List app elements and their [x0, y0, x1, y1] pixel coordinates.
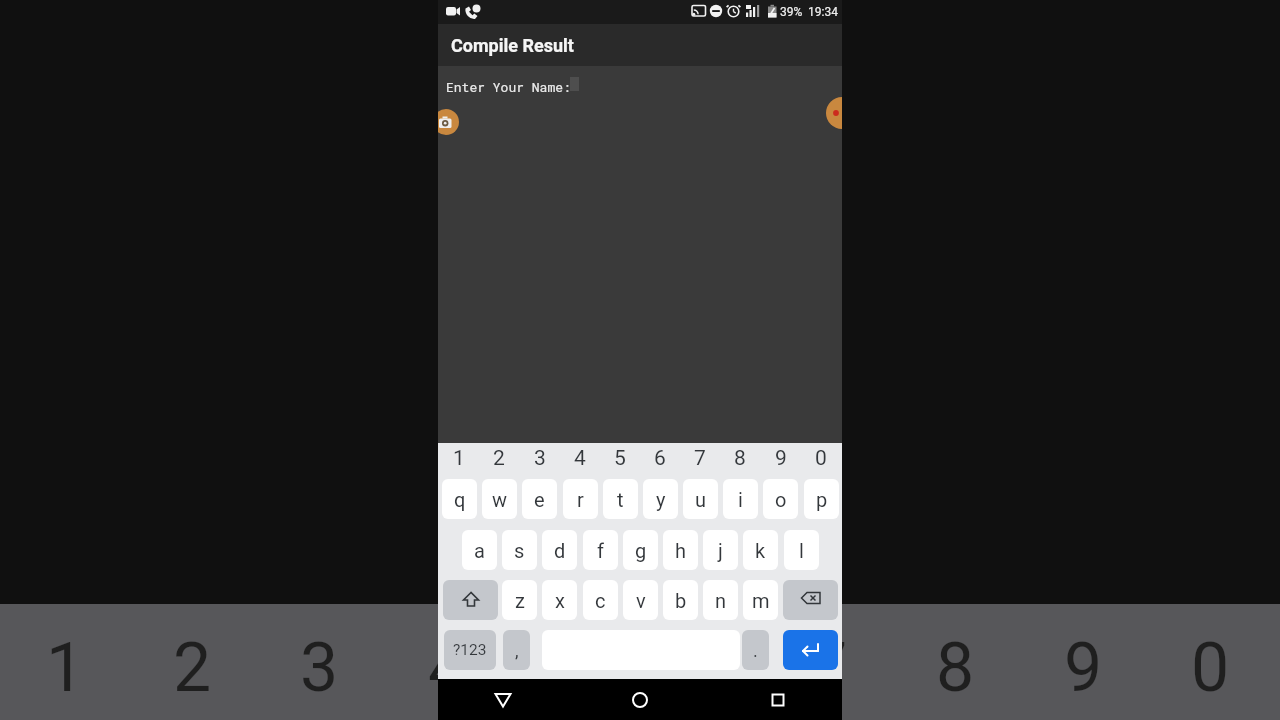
- staticText: 1: [46, 628, 85, 708]
- button[interactable]: g: [623, 530, 658, 570]
- button[interactable]: u: [683, 479, 718, 519]
- button[interactable]: a: [462, 530, 497, 570]
- button[interactable]: 8: [720, 446, 760, 470]
- staticText: 2: [173, 628, 212, 708]
- button[interactable]: 1: [439, 446, 479, 470]
- staticText: 6: [654, 446, 666, 470]
- staticText: 9: [775, 446, 787, 470]
- button[interactable]: f: [583, 530, 618, 570]
- button[interactable]: n: [703, 580, 738, 620]
- staticText: r: [577, 488, 584, 511]
- staticText: Enter Your Name:: [446, 78, 571, 95]
- button[interactable]: v: [623, 580, 658, 620]
- button[interactable]: e: [522, 479, 557, 519]
- staticText: 8: [936, 628, 975, 708]
- button[interactable]: k: [743, 530, 778, 570]
- button[interactable]: l: [784, 530, 819, 570]
- button[interactable]: s: [502, 530, 537, 570]
- button[interactable]: [826, 97, 842, 129]
- staticText: 3: [300, 628, 339, 708]
- staticText: 4: [574, 446, 586, 470]
- button[interactable]: x: [542, 580, 577, 620]
- staticText: c: [595, 589, 606, 612]
- staticText: 2: [493, 446, 505, 470]
- button[interactable]: t: [603, 479, 638, 519]
- button[interactable]: Compile Result: [438, 24, 842, 66]
- staticText: 7: [694, 446, 706, 470]
- button[interactable]: c: [583, 580, 618, 620]
- button[interactable]: 2: [479, 446, 519, 470]
- staticText: 5: [614, 446, 626, 470]
- staticText: u: [695, 488, 707, 511]
- staticText: i: [738, 488, 743, 511]
- staticText: 0: [1191, 628, 1230, 708]
- staticText: 8: [734, 446, 746, 470]
- button[interactable]: ,: [503, 630, 530, 670]
- button[interactable]: 5: [600, 446, 640, 470]
- staticText: m: [752, 589, 770, 612]
- staticText: 7: [809, 628, 848, 708]
- button[interactable]: [438, 109, 459, 135]
- button[interactable]: [762, 684, 794, 716]
- staticText: k: [755, 539, 766, 562]
- button[interactable]: [783, 580, 838, 620]
- staticText: 39%: [780, 5, 803, 19]
- staticText: d: [554, 539, 566, 562]
- staticText: 6: [682, 628, 721, 708]
- staticText: h: [675, 539, 687, 562]
- button[interactable]: 3: [520, 446, 560, 470]
- button[interactable]: 0: [801, 446, 841, 470]
- button[interactable]: 9: [761, 446, 801, 470]
- staticText: 3: [534, 446, 546, 470]
- button[interactable]: m: [743, 580, 778, 620]
- staticText: Compile Result: [451, 35, 574, 56]
- button[interactable]: w: [482, 479, 517, 519]
- staticText: 1: [453, 446, 465, 470]
- staticText: o: [775, 488, 787, 511]
- button[interactable]: 4: [560, 446, 600, 470]
- staticText: v: [636, 589, 646, 612]
- button[interactable]: b: [663, 580, 698, 620]
- staticText: j: [718, 539, 723, 562]
- button[interactable]: d: [542, 530, 577, 570]
- button[interactable]: z: [502, 580, 537, 620]
- button[interactable]: 7: [680, 446, 720, 470]
- staticText: q: [454, 488, 466, 511]
- staticText: a: [474, 539, 485, 562]
- staticText: g: [635, 539, 647, 562]
- staticText: 0: [815, 446, 827, 470]
- button[interactable]: o: [763, 479, 798, 519]
- button[interactable]: i: [723, 479, 758, 519]
- staticText: s: [514, 539, 525, 562]
- button[interactable]: [783, 630, 838, 670]
- staticText: ?123: [453, 641, 487, 659]
- staticText: .: [753, 640, 758, 661]
- staticText: 9: [1064, 628, 1103, 708]
- staticText: t: [617, 488, 624, 511]
- staticText: 5: [555, 628, 594, 708]
- button[interactable]: r: [563, 479, 598, 519]
- staticText: f: [597, 539, 604, 562]
- staticText: z: [515, 589, 525, 612]
- button[interactable]: p: [804, 479, 839, 519]
- staticText: ,: [515, 640, 519, 661]
- button[interactable]: h: [663, 530, 698, 570]
- button[interactable]: [487, 684, 519, 716]
- staticText: l: [799, 539, 804, 562]
- button[interactable]: j: [703, 530, 738, 570]
- staticText: y: [656, 488, 666, 511]
- button[interactable]: ?123: [444, 630, 496, 670]
- button[interactable]: [624, 684, 656, 716]
- staticText: e: [534, 488, 545, 511]
- button[interactable]: y: [643, 479, 678, 519]
- staticText: 19:34: [808, 5, 838, 19]
- button[interactable]: [443, 580, 498, 620]
- staticText: b: [675, 589, 687, 612]
- staticText: p: [816, 488, 828, 511]
- staticText: n: [715, 589, 727, 612]
- staticText: 4: [428, 628, 467, 708]
- button[interactable]: 6: [640, 446, 680, 470]
- button[interactable]: q: [442, 479, 477, 519]
- button[interactable]: .: [742, 630, 769, 670]
